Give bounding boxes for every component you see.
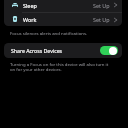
button[interactable]: Sleep bbox=[4, 0, 122, 12]
staticText: Sleep bbox=[23, 2, 37, 9]
staticText: Share Across Devices bbox=[11, 47, 63, 54]
staticText: Turning a Focus on for this device will … bbox=[10, 61, 109, 73]
button[interactable]: Share Across Devices bbox=[4, 43, 122, 58]
staticText: Set Up bbox=[93, 2, 110, 9]
button[interactable]: Work bbox=[4, 13, 122, 26]
staticText: Focus silences alerts and notifications. bbox=[10, 30, 88, 36]
staticText: Set Up bbox=[93, 16, 110, 23]
staticText: Work bbox=[23, 16, 37, 23]
